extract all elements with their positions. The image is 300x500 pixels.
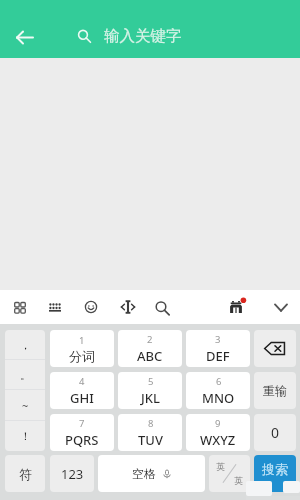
staticText: 英 bbox=[234, 475, 243, 486]
button[interactable]: Keyboard layouts bbox=[3, 290, 37, 324]
button[interactable]: 输入关键字 bbox=[76, 25, 182, 47]
button[interactable]: Search bbox=[254, 455, 296, 492]
button[interactable]: 4 bbox=[50, 372, 114, 409]
staticText: 8 bbox=[148, 417, 154, 430]
staticText: DEF bbox=[206, 347, 230, 365]
button[interactable]: 123 bbox=[50, 455, 94, 492]
button[interactable]: 空格 bbox=[98, 455, 205, 492]
button[interactable]: ， bbox=[5, 330, 45, 359]
button[interactable]: 5 bbox=[118, 372, 182, 409]
staticText: 6 bbox=[216, 375, 222, 388]
staticText: ， bbox=[20, 338, 31, 352]
button[interactable]: 1 bbox=[50, 330, 114, 367]
staticText: 5 bbox=[148, 375, 154, 388]
button[interactable]: Emoji bbox=[74, 290, 108, 324]
staticText: ~ bbox=[22, 398, 29, 413]
button[interactable]: 英 bbox=[209, 455, 250, 492]
staticText: GHI bbox=[70, 389, 94, 407]
staticText: 123 bbox=[61, 465, 84, 483]
button[interactable]: 8 bbox=[118, 414, 182, 451]
button[interactable]: 9 bbox=[186, 414, 250, 451]
staticText: MNO bbox=[202, 389, 235, 407]
button[interactable]: ~ bbox=[5, 390, 45, 420]
button[interactable]: Backspace bbox=[254, 330, 296, 367]
button[interactable]: ！ bbox=[5, 421, 45, 451]
button[interactable]: 符 bbox=[5, 455, 45, 492]
button[interactable]: Back bbox=[6, 19, 42, 55]
staticText: 4 bbox=[79, 375, 85, 388]
button[interactable]: 2 bbox=[118, 330, 182, 367]
button[interactable]: Edit text bbox=[111, 290, 145, 324]
button[interactable]: Hide keyboard bbox=[264, 290, 298, 324]
staticText: 英 bbox=[216, 461, 225, 472]
staticText: 0 bbox=[271, 423, 280, 442]
staticText: TUV bbox=[138, 431, 163, 449]
button[interactable]: 6 bbox=[186, 372, 250, 409]
staticText: JKL bbox=[141, 389, 160, 407]
staticText: 符 bbox=[19, 466, 32, 482]
staticText: 重输 bbox=[263, 383, 287, 398]
button[interactable]: Switch keyboard bbox=[38, 290, 72, 324]
staticText: 。 bbox=[20, 368, 31, 382]
staticText: 2 bbox=[147, 333, 153, 346]
staticText: 搜索 bbox=[262, 461, 288, 477]
button[interactable]: 0 bbox=[254, 414, 296, 451]
button[interactable]: 重输 bbox=[254, 372, 296, 409]
button[interactable]: Search bbox=[144, 290, 178, 324]
staticText: PQRS bbox=[65, 431, 99, 449]
staticText: 9 bbox=[215, 417, 221, 430]
staticText: 分词 bbox=[69, 348, 95, 364]
button[interactable]: Store bbox=[219, 290, 253, 324]
staticText: 1 bbox=[79, 334, 85, 347]
staticText: 输入关键字 bbox=[104, 26, 182, 46]
staticText: ！ bbox=[20, 429, 31, 443]
staticText: 空格 bbox=[132, 466, 156, 481]
staticText: WXYZ bbox=[200, 431, 236, 449]
button[interactable]: 3 bbox=[186, 330, 250, 367]
staticText: ABC bbox=[137, 347, 163, 365]
staticText: 3 bbox=[215, 333, 221, 346]
staticText: 7 bbox=[79, 417, 85, 430]
button[interactable]: 7 bbox=[50, 414, 114, 451]
button[interactable]: 。 bbox=[5, 360, 45, 389]
